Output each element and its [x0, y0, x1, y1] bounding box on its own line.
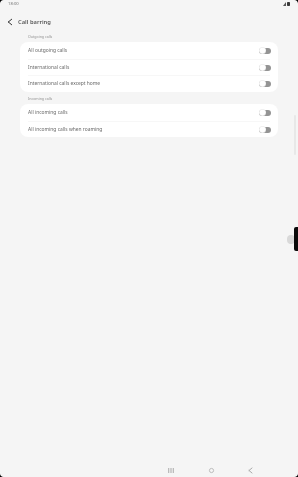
button[interactable]: Home — [203, 463, 219, 477]
button[interactable]: Toggle off — [259, 80, 271, 87]
button[interactable]: Toggle off — [259, 64, 271, 71]
staticText: International calls — [28, 64, 259, 71]
staticText: All outgoing calls — [28, 47, 259, 54]
button[interactable]: Toggle off — [259, 47, 271, 54]
staticText: Call barring — [18, 18, 51, 26]
staticText: Outgoing calls — [28, 34, 53, 39]
button[interactable]: All incoming calls when roaming — [20, 121, 278, 137]
button[interactable]: All outgoing calls — [20, 42, 278, 59]
button[interactable]: All incoming calls — [20, 104, 278, 121]
staticText: Incoming calls — [28, 96, 53, 101]
button[interactable]: Recent apps — [163, 463, 179, 477]
staticText: All incoming calls when roaming — [28, 126, 259, 133]
button[interactable]: International calls — [20, 59, 278, 76]
button[interactable]: Back — [242, 463, 258, 477]
button[interactable]: International calls except home — [20, 75, 278, 92]
staticText: International calls except home — [28, 80, 259, 87]
staticText: All incoming calls — [28, 109, 259, 116]
staticText: 18:00 — [8, 1, 19, 7]
button[interactable]: Navigate up — [0, 14, 19, 30]
button[interactable]: Toggle off — [259, 109, 271, 116]
button[interactable]: Edge panel handle — [294, 227, 298, 251]
button[interactable]: Toggle off — [259, 126, 271, 133]
